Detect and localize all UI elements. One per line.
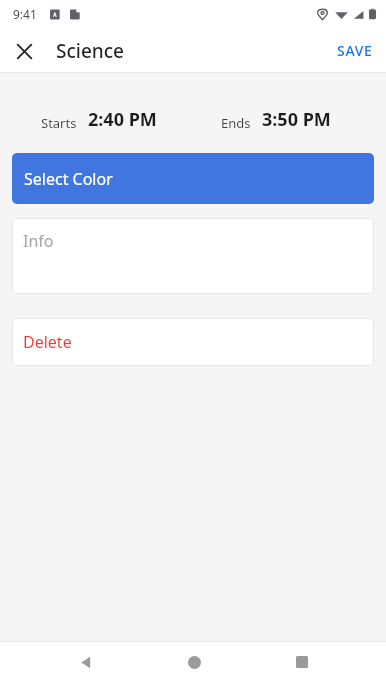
button[interactable]: Home: [174, 642, 214, 682]
button[interactable]: Recent apps: [282, 642, 322, 682]
staticText: Ends: [221, 114, 251, 132]
button[interactable]: Back: [66, 642, 106, 682]
staticText: 2:40 PM: [88, 107, 157, 132]
button[interactable]: Info: [12, 218, 374, 294]
staticText: Starts: [41, 114, 77, 132]
button[interactable]: SAVE: [330, 35, 380, 66]
staticText: Info: [23, 230, 54, 252]
button[interactable]: Delete: [12, 318, 374, 366]
button[interactable]: Close: [7, 34, 41, 68]
button[interactable]: Ends: [221, 107, 331, 132]
staticText: SAVE: [337, 41, 373, 60]
staticText: Delete: [23, 331, 72, 353]
button[interactable]: Select Color: [12, 153, 374, 204]
staticText: 3:50 PM: [262, 107, 331, 132]
button[interactable]: Starts: [41, 107, 157, 132]
staticText: 9:41: [13, 6, 37, 22]
staticText: Select Color: [24, 168, 113, 190]
staticText: Science: [56, 38, 124, 64]
